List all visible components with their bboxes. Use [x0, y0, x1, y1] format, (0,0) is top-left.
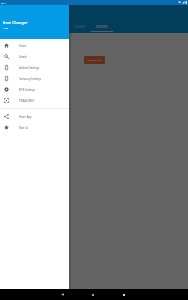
button[interactable]: CHANGE	[69, 21, 91, 32]
staticText: 1.0.0	[3, 27, 9, 30]
button[interactable]: Home	[87, 289, 98, 300]
staticText: 5:11	[1, 1, 6, 4]
staticText: MTK Settings	[19, 88, 35, 92]
staticText: Rate Us	[19, 126, 29, 130]
button[interactable]: Home	[0, 40, 69, 51]
button[interactable]: Rate Us	[0, 122, 69, 133]
button[interactable]: Recents	[118, 289, 129, 300]
staticText: CHANGE IMEI	[87, 59, 102, 62]
staticText: CHANGE	[74, 25, 86, 29]
button[interactable]: Samsung Settings	[0, 73, 69, 84]
staticText: Search	[19, 55, 28, 59]
staticText: Share App	[19, 115, 32, 119]
staticText: Android Settings	[19, 66, 40, 70]
button[interactable]: Search	[0, 51, 69, 62]
staticText: RESTORE	[96, 25, 108, 29]
button[interactable]: Android Settings	[0, 62, 69, 73]
button[interactable]: TWEAK IMEI	[0, 95, 69, 106]
staticText: TWEAK IMEI	[19, 99, 34, 103]
button[interactable]: MTK Settings	[0, 84, 69, 95]
button[interactable]: Back	[57, 289, 68, 300]
staticText: Imei Changer	[3, 20, 28, 25]
staticText: Samsung Settings	[19, 77, 41, 81]
button[interactable]: CHANGE IMEI	[84, 56, 105, 64]
button[interactable]: Share App	[0, 111, 69, 122]
staticText: Home	[19, 44, 27, 48]
button[interactable]: RESTORE	[91, 21, 113, 32]
